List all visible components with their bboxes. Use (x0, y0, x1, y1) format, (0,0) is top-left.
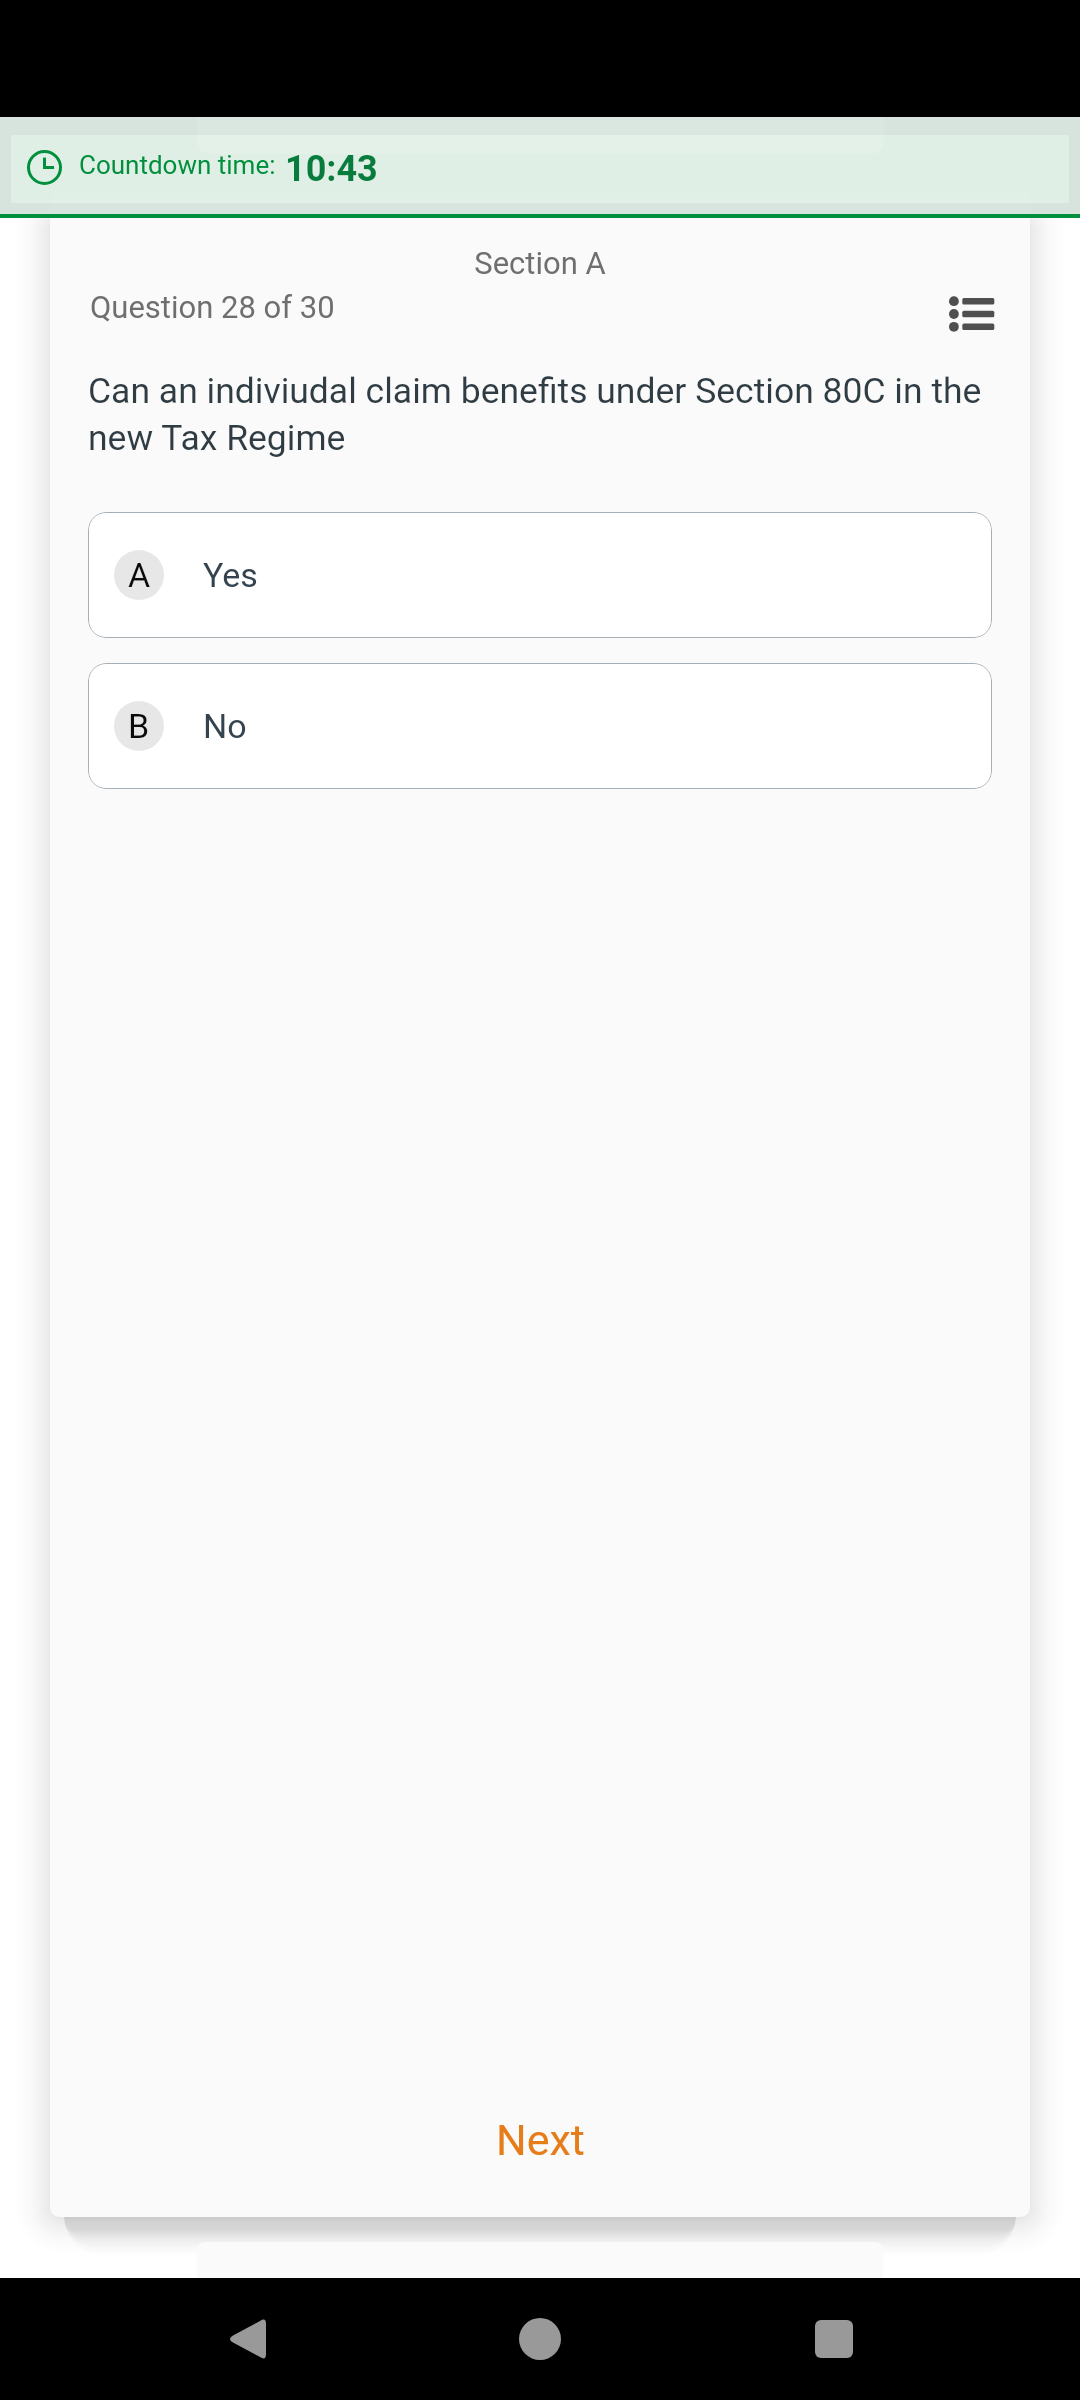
staticText: B (128, 706, 150, 746)
staticText: Yes (203, 555, 258, 595)
staticText: A (128, 555, 151, 595)
staticText: No (203, 706, 247, 746)
button[interactable]: Home (500, 2278, 580, 2400)
staticText: Can an indiviudal claim benefits under S… (88, 370, 1003, 459)
button[interactable]: Next (50, 2070, 1030, 2210)
button[interactable]: B (88, 663, 992, 789)
button[interactable]: Back (206, 2278, 286, 2400)
staticText: Section A (50, 245, 1030, 281)
button[interactable]: Recent apps (794, 2278, 874, 2400)
staticText: Next (496, 2115, 585, 2165)
button[interactable]: A (88, 512, 992, 638)
button[interactable]: Question list (924, 268, 1020, 364)
staticText: Countdown time: (79, 150, 276, 180)
staticText: Question 28 of 30 (90, 289, 335, 325)
staticText: 10:43 (285, 148, 378, 190)
